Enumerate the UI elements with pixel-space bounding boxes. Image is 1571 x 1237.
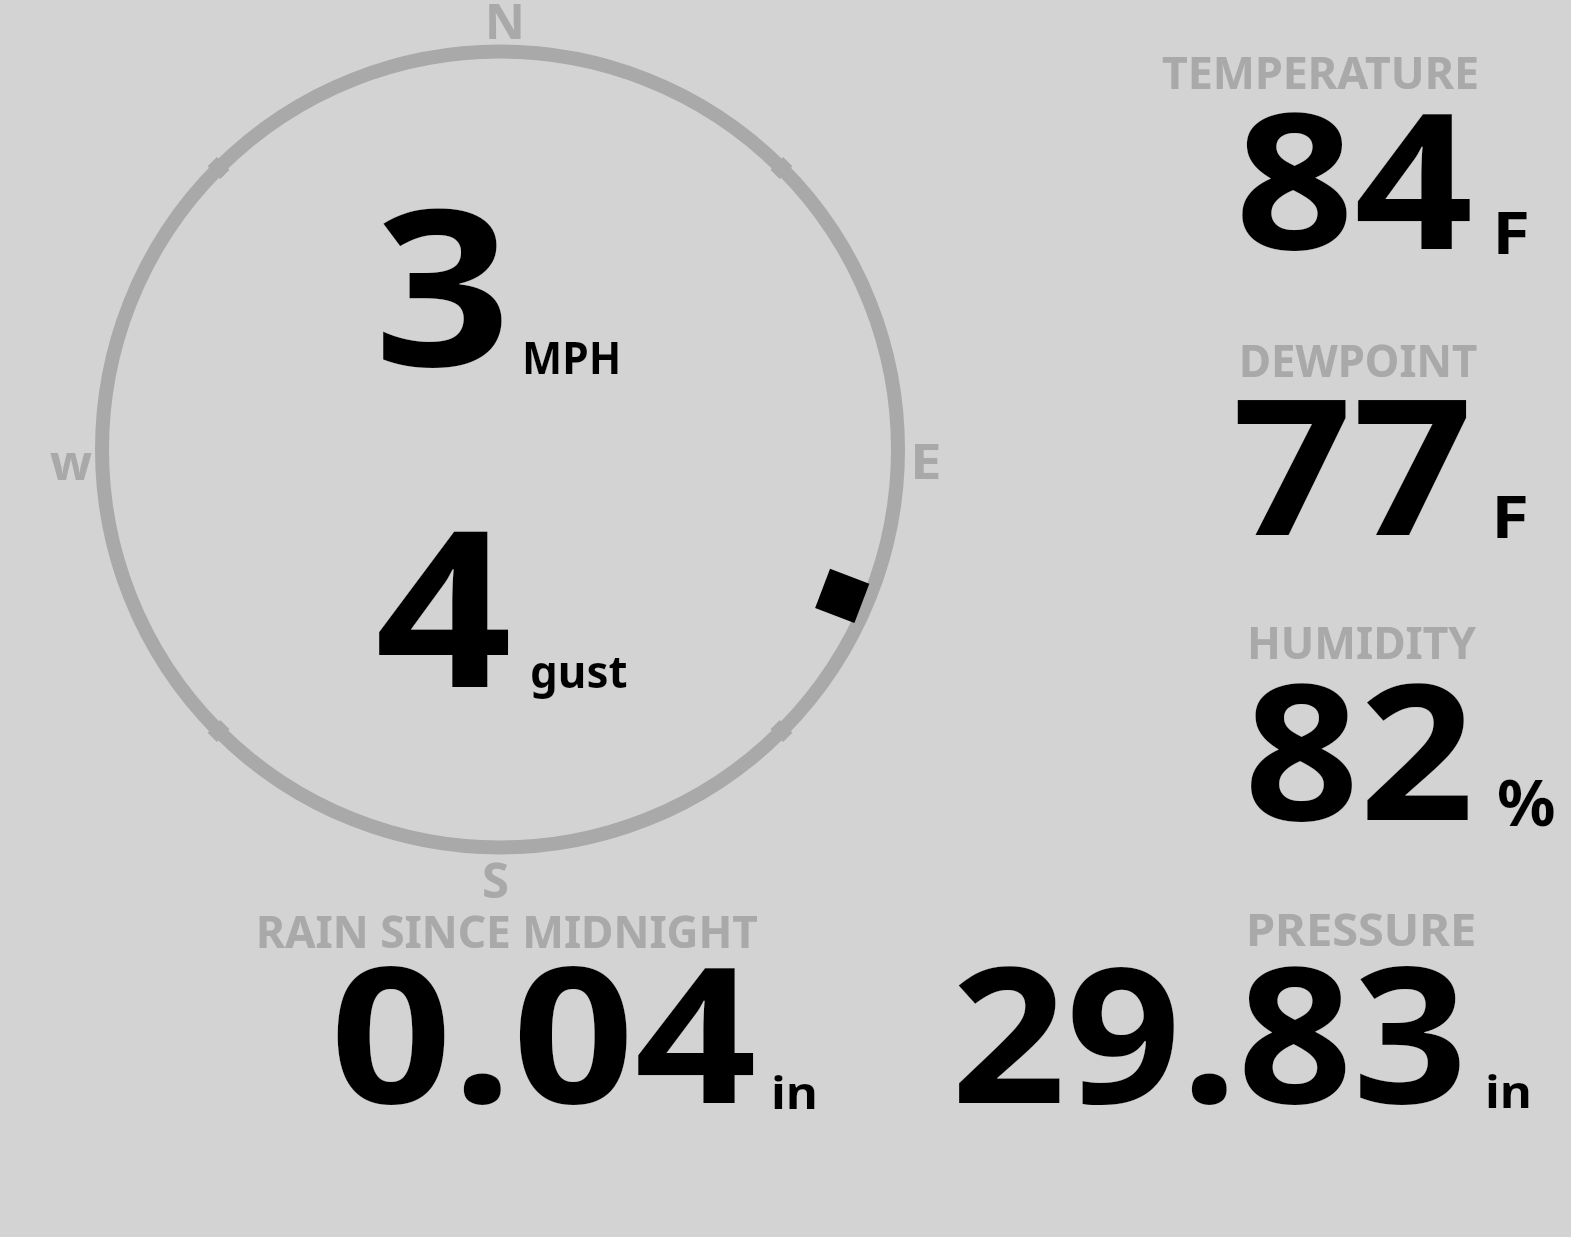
staticText: S: [482, 846, 509, 913]
staticText: 84: [1235, 47, 1474, 304]
button[interactable]: Wind speed and direction: [100, 50, 900, 850]
staticText: N: [485, 0, 525, 54]
staticText: 0.04: [330, 901, 757, 1158]
staticText: F: [1491, 475, 1530, 556]
button[interactable]: Rain since midnight 0.04 in: [250, 890, 830, 1120]
staticText: MPH: [522, 326, 621, 387]
staticText: F: [1492, 191, 1531, 272]
button[interactable]: Pressure 29.83 in: [940, 885, 1550, 1120]
staticText: in: [1485, 1060, 1532, 1121]
staticText: %: [1497, 757, 1556, 846]
staticText: 82: [1244, 618, 1475, 875]
staticText: 3: [374, 133, 511, 430]
staticText: 77: [1232, 333, 1474, 590]
staticText: gust: [530, 640, 628, 701]
staticText: w: [50, 428, 92, 495]
button[interactable]: Temperature 84 F: [1150, 30, 1560, 270]
staticText: 4: [375, 454, 512, 751]
staticText: 29.83: [951, 901, 1468, 1158]
staticText: PRESSURE: [1246, 898, 1476, 959]
staticText: in: [771, 1061, 818, 1122]
staticText: TEMPERATURE: [1162, 41, 1479, 102]
button[interactable]: Humidity 82 percent: [1150, 598, 1560, 838]
button[interactable]: Dewpoint 77 F: [1150, 315, 1560, 555]
staticText: DEWPOINT: [1239, 329, 1478, 390]
staticText: E: [910, 427, 942, 494]
staticText: RAIN SINCE MIDNIGHT: [256, 900, 759, 961]
staticText: HUMIDITY: [1247, 611, 1476, 672]
